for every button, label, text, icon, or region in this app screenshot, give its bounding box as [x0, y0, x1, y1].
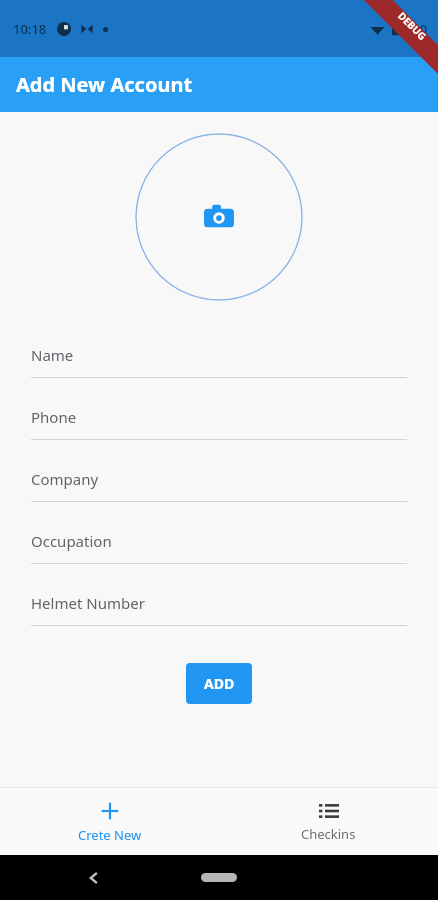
- button[interactable]: Phone: [0, 395, 438, 457]
- staticText: DEBUG: [395, 9, 430, 43]
- staticText: Checkins: [301, 825, 356, 843]
- button[interactable]: Company: [0, 457, 438, 519]
- staticText: Company: [31, 469, 99, 489]
- button[interactable]: Crete New: [0, 788, 219, 855]
- button[interactable]: Name: [0, 333, 438, 395]
- staticText: Crete New: [78, 826, 142, 844]
- staticText: ADD: [204, 674, 235, 693]
- button[interactable]: Occupation: [0, 519, 438, 581]
- staticText: Add New Account: [16, 71, 193, 98]
- staticText: 10:18: [13, 20, 47, 38]
- button[interactable]: ADD: [186, 663, 252, 704]
- staticText: Occupation: [31, 531, 112, 551]
- button[interactable]: Checkins: [219, 788, 438, 855]
- button[interactable]: Add photo: [135, 133, 303, 301]
- staticText: 100: [405, 20, 428, 38]
- button[interactable]: Helmet Number: [0, 581, 438, 643]
- staticText: Helmet Number: [31, 593, 145, 613]
- staticText: Phone: [31, 407, 77, 427]
- staticText: Name: [31, 345, 74, 365]
